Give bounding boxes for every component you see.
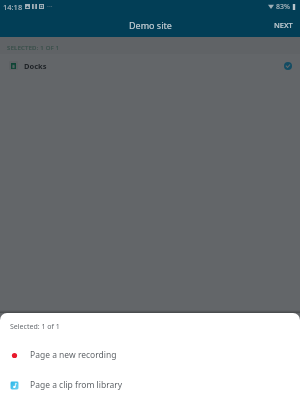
staticText: SELECTED: 1 OF 1 (7, 44, 60, 52)
staticText: NEXT (274, 20, 293, 30)
staticText: Page a clip from library (30, 379, 123, 391)
staticText: Selected: 1 of 1 (10, 322, 60, 332)
button[interactable]: Page a new recording (0, 340, 300, 370)
button[interactable]: Docks (0, 54, 300, 77)
other: Selected (284, 62, 292, 70)
button[interactable]: NEXT (267, 15, 300, 35)
staticText: 14:18 (3, 2, 23, 12)
staticText: Demo site (129, 19, 172, 31)
staticText: Docks (24, 61, 47, 71)
staticText: Page a new recording (30, 349, 117, 361)
staticText: 83% (276, 2, 290, 12)
staticText: ··· (47, 2, 53, 12)
button[interactable]: Page a clip from library (0, 370, 300, 400)
